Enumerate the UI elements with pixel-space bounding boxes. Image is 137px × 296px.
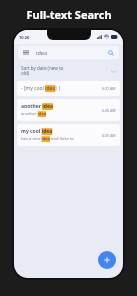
staticText: my cool idea	[21, 128, 53, 135]
button[interactable]: Add note	[98, 251, 116, 269]
staticText: has a nice idea and links to	[21, 136, 74, 142]
staticText: another idea	[21, 103, 53, 110]
staticText: Full-text Search	[26, 7, 112, 22]
button[interactable]: - [my cool idea] |	[17, 81, 120, 96]
button[interactable]: Menu	[18, 46, 119, 59]
staticText: 6:26 AM	[102, 108, 116, 113]
button[interactable]: Sort by date (new to old)	[14, 61, 123, 81]
button[interactable]: my cool idea	[17, 124, 120, 146]
staticText: Sort by date (new to old)	[21, 65, 111, 77]
staticText: 6:27 AM	[102, 86, 116, 91]
staticText: idea	[36, 49, 107, 56]
button[interactable]: Search	[107, 49, 115, 57]
staticText: another idea	[21, 111, 47, 117]
staticText: 10:20	[19, 35, 30, 40]
staticText: 6:25 AM	[102, 133, 116, 138]
button[interactable]: Menu	[22, 49, 29, 56]
button[interactable]: another idea	[17, 99, 120, 121]
staticText: - [my cool idea] |	[21, 85, 61, 92]
